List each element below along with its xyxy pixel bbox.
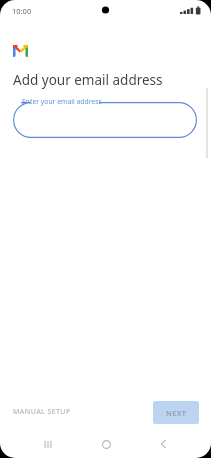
button[interactable]: NEXT [153,401,199,424]
button[interactable]: Enter your email address [13,102,197,138]
staticText: MANUAL SETUP [13,407,71,417]
button[interactable]: Recents [34,430,62,458]
staticText: Enter your email address [22,97,102,106]
staticText: 10:00 [12,6,32,16]
button[interactable]: Back [149,430,177,458]
button[interactable]: MANUAL SETUP [8,403,76,421]
staticText: NEXT [166,408,187,418]
staticText: Add your email address [13,71,163,89]
button[interactable]: Home [92,430,120,458]
